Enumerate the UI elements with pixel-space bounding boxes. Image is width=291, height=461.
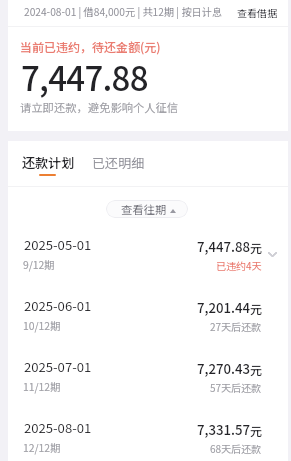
staticText: 已还明细 <box>92 153 145 172</box>
staticText: 27天后还款 <box>210 319 262 333</box>
staticText: 2025-07-01 <box>24 357 92 376</box>
staticText: 还款计划 <box>22 153 75 172</box>
staticText: 10/12期 <box>23 318 61 333</box>
staticText: 2025-05-01 <box>24 235 92 254</box>
button[interactable]: 2025-08-01 <box>8 411 288 461</box>
staticText: 元 <box>250 422 263 439</box>
staticText: 68天后还款 <box>210 441 262 455</box>
staticText: 2025-08-01 <box>24 418 92 437</box>
button[interactable]: 2025-07-01 <box>8 350 288 411</box>
staticText: 元 <box>250 239 263 256</box>
staticText: 请立即还款，避免影响个人征信 <box>20 99 179 115</box>
staticText: 7,201.44 <box>197 298 250 317</box>
staticText: 7,331.57 <box>197 420 250 439</box>
staticText: 7,447.88 <box>197 237 250 256</box>
button[interactable]: 查看往期 <box>106 200 188 218</box>
staticText: 57天后还款 <box>210 380 262 394</box>
staticText: 7,270.43 <box>197 359 250 378</box>
staticText: 2025-06-01 <box>24 296 92 315</box>
staticText: 已违约4天 <box>216 258 262 272</box>
button[interactable]: 2025-05-01 <box>8 228 288 289</box>
staticText: 9/12期 <box>23 257 55 272</box>
button[interactable]: 还款计划 <box>22 153 75 172</box>
staticText: 当前已违约，待还金额(元) <box>20 38 161 55</box>
staticText: 查看往期 <box>121 201 167 217</box>
staticText: 12/12期 <box>23 440 61 455</box>
button[interactable]: 查看借据 <box>231 2 283 22</box>
staticText: 查看借据 <box>237 5 277 19</box>
button[interactable]: 2025-06-01 <box>8 289 288 350</box>
staticText: 7,447.88 <box>21 53 148 101</box>
staticText: 元 <box>250 361 263 378</box>
staticText: 元 <box>250 300 263 317</box>
button[interactable]: 已还明细 <box>92 153 145 172</box>
staticText: 11/12期 <box>23 379 61 394</box>
staticText: 2024-08-01 | 借84,000元 | 共12期 | 按日计息 <box>24 4 223 19</box>
